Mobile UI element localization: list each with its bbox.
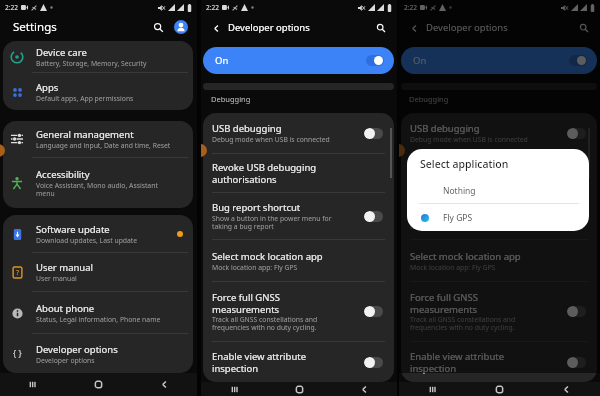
staticText: Developer options xyxy=(36,356,95,365)
button[interactable]: Force full GNSS measurements xyxy=(203,282,394,342)
staticText: Developer options xyxy=(426,21,508,34)
staticText: Revoke USB debugging authorisations xyxy=(212,161,328,185)
button[interactable]: Nothing xyxy=(407,178,589,203)
button[interactable]: Back xyxy=(533,382,600,396)
button[interactable]: Revoke USB debugging authorisations xyxy=(203,154,394,193)
staticText: ? xyxy=(16,268,20,278)
staticText: USB debugging xyxy=(410,122,526,135)
button[interactable]: Home xyxy=(267,382,332,396)
staticText: Track all GNSS constellations and freque… xyxy=(410,315,540,332)
staticText: Developer options xyxy=(228,21,310,34)
staticText: About phone xyxy=(36,302,95,315)
staticText: { } xyxy=(13,348,22,360)
button[interactable]: Apps xyxy=(3,73,193,110)
staticText: Track all GNSS constellations and freque… xyxy=(212,315,342,332)
button[interactable]: Enable view attribute inspection xyxy=(401,342,597,382)
button[interactable]: Device care xyxy=(3,41,193,73)
staticText: User manual xyxy=(36,261,93,274)
button[interactable]: Recents xyxy=(0,373,65,396)
staticText: 2:22 xyxy=(5,3,18,12)
staticText: Status, Legal information, Phone name xyxy=(36,315,161,324)
button[interactable]: Bug report shortcut xyxy=(203,193,394,240)
staticText: General management xyxy=(36,128,134,141)
button[interactable]: Select mock location app xyxy=(401,240,597,282)
button[interactable]: Back xyxy=(209,21,223,35)
button[interactable]: Back xyxy=(332,382,397,396)
staticText: Debugging xyxy=(409,94,449,104)
button[interactable]: Bug report shortcut xyxy=(401,193,597,240)
staticText: On xyxy=(215,54,229,67)
staticText: Default apps, App permissions xyxy=(36,94,134,103)
button[interactable]: Search xyxy=(374,21,388,35)
staticText: Developer options xyxy=(36,343,118,356)
staticText: Enable view attribute inspection xyxy=(410,350,526,374)
button[interactable]: Home xyxy=(65,373,131,396)
staticText: Voice Assistant, Mono audio, Assistant m… xyxy=(36,181,173,198)
staticText: Nothing xyxy=(443,185,476,197)
staticText: Language and input, Date and time, Reset xyxy=(36,141,171,150)
staticText: User manual xyxy=(36,274,77,283)
staticText: Debug mode when USB is connected xyxy=(410,135,528,144)
button[interactable]: On xyxy=(203,47,394,74)
staticText: On xyxy=(413,54,427,67)
button[interactable]: General management xyxy=(3,121,193,158)
button[interactable]: On xyxy=(401,47,597,74)
staticText: Battery, Storage, Memory, Security xyxy=(36,59,147,68)
button[interactable]: Fly GPS xyxy=(407,204,589,231)
staticText: Revoke USB debugging authorisations xyxy=(410,161,526,185)
button[interactable]: Software update xyxy=(3,215,193,253)
button[interactable]: Recents xyxy=(399,382,466,396)
button[interactable]: Search xyxy=(150,19,166,35)
staticText: Show a button in the power menu for taki… xyxy=(212,214,342,231)
staticText: Debug mode when USB is connected xyxy=(212,135,330,144)
staticText: Download updates, Last update xyxy=(36,236,138,245)
staticText: Software update xyxy=(36,223,110,236)
button[interactable]: ? xyxy=(3,253,193,292)
staticText: Mock location app: Fly GPS xyxy=(212,263,298,272)
staticText: Settings xyxy=(13,19,57,35)
staticText: Select mock location app xyxy=(212,250,328,263)
staticText: 2:22 xyxy=(206,3,219,12)
button[interactable]: Force full GNSS measurements xyxy=(401,282,597,342)
staticText: Device care xyxy=(36,46,87,59)
staticText: Bug report shortcut xyxy=(410,201,526,214)
button[interactable]: Recents xyxy=(201,382,267,396)
button[interactable]: Search xyxy=(577,21,591,35)
staticText: Force full GNSS measurements xyxy=(212,291,328,315)
button[interactable]: USB debugging xyxy=(401,113,597,154)
button[interactable]: USB debugging xyxy=(203,113,394,154)
staticText: Select mock location app xyxy=(410,250,526,263)
staticText: Show a button in the power menu for taki… xyxy=(410,214,540,231)
button[interactable]: Back xyxy=(407,21,421,35)
staticText: Accessibility xyxy=(36,168,90,181)
button[interactable]: Back xyxy=(131,373,197,396)
button[interactable]: Home xyxy=(466,382,533,396)
staticText: Select application xyxy=(420,157,509,171)
button[interactable]: About phone xyxy=(3,292,193,334)
staticText: Force full GNSS measurements xyxy=(410,291,526,315)
button[interactable]: Enable view attribute inspection xyxy=(203,342,394,382)
staticText: Mock location app: Fly GPS xyxy=(410,263,496,272)
button[interactable]: { } xyxy=(3,334,193,373)
staticText: Enable view attribute inspection xyxy=(212,350,328,374)
button[interactable]: Accessibility xyxy=(3,158,193,208)
staticText: Apps xyxy=(36,81,59,94)
staticText: 2:22 xyxy=(404,3,417,12)
staticText: Fly GPS xyxy=(443,212,473,224)
button[interactable]: Account xyxy=(174,20,188,34)
button[interactable]: Revoke USB debugging authorisations xyxy=(401,154,597,193)
button[interactable]: Select mock location app xyxy=(203,240,394,282)
staticText: USB debugging xyxy=(212,122,328,135)
staticText: Bug report shortcut xyxy=(212,201,328,214)
staticText: Debugging xyxy=(211,94,251,104)
